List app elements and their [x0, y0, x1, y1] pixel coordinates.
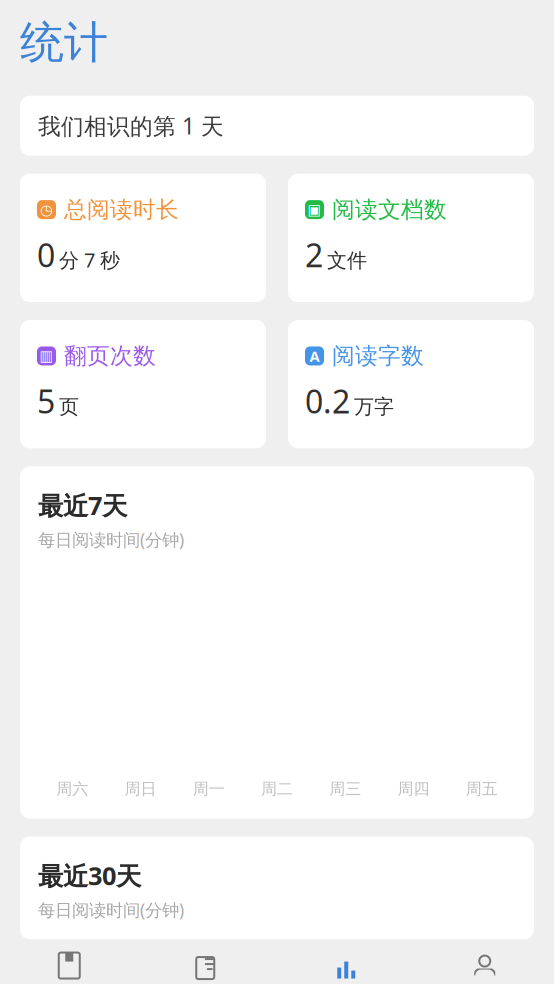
staticText: 翻页次数: [64, 342, 156, 370]
button[interactable]: 书架: [0, 943, 138, 984]
staticText: 每日阅读时间(分钟): [38, 528, 184, 551]
staticText: 周六: [56, 779, 88, 799]
staticText: 分 7 秒: [59, 246, 120, 273]
button[interactable]: ▥: [20, 320, 266, 448]
staticText: 总阅读时长: [64, 196, 179, 223]
staticText: 周三: [329, 779, 361, 799]
staticText: 文件: [327, 248, 367, 273]
staticText: 0.2: [305, 380, 350, 422]
staticText: 周二: [261, 779, 293, 799]
button[interactable]: 书库: [138, 942, 277, 984]
staticText: 统计: [20, 16, 108, 70]
staticText: 5: [37, 380, 55, 422]
button[interactable]: A: [288, 320, 534, 448]
staticText: 每日阅读时间(分钟): [38, 898, 184, 921]
staticText: 周日: [124, 779, 156, 799]
staticText: ◷: [40, 201, 53, 218]
button[interactable]: 统计: [277, 943, 415, 984]
staticText: 阅读字数: [332, 342, 424, 370]
button[interactable]: 我的: [415, 943, 554, 984]
staticText: 周一: [193, 779, 225, 799]
staticText: 0: [37, 233, 55, 276]
staticText: 周五: [466, 779, 498, 799]
staticText: ▣: [307, 201, 321, 218]
staticText: 最近30天: [38, 859, 141, 892]
staticText: 阅读文档数: [332, 196, 447, 223]
staticText: ▥: [39, 348, 53, 364]
staticText: 2: [305, 233, 323, 276]
button[interactable]: ◷: [20, 174, 266, 302]
staticText: 我们相识的第 1 天: [38, 111, 224, 141]
staticText: 周四: [398, 779, 430, 799]
button[interactable]: ▣: [288, 174, 534, 302]
staticText: 最近7天: [38, 488, 127, 522]
staticText: 万字: [354, 395, 394, 419]
staticText: 页: [59, 395, 79, 419]
staticText: A: [309, 346, 319, 366]
